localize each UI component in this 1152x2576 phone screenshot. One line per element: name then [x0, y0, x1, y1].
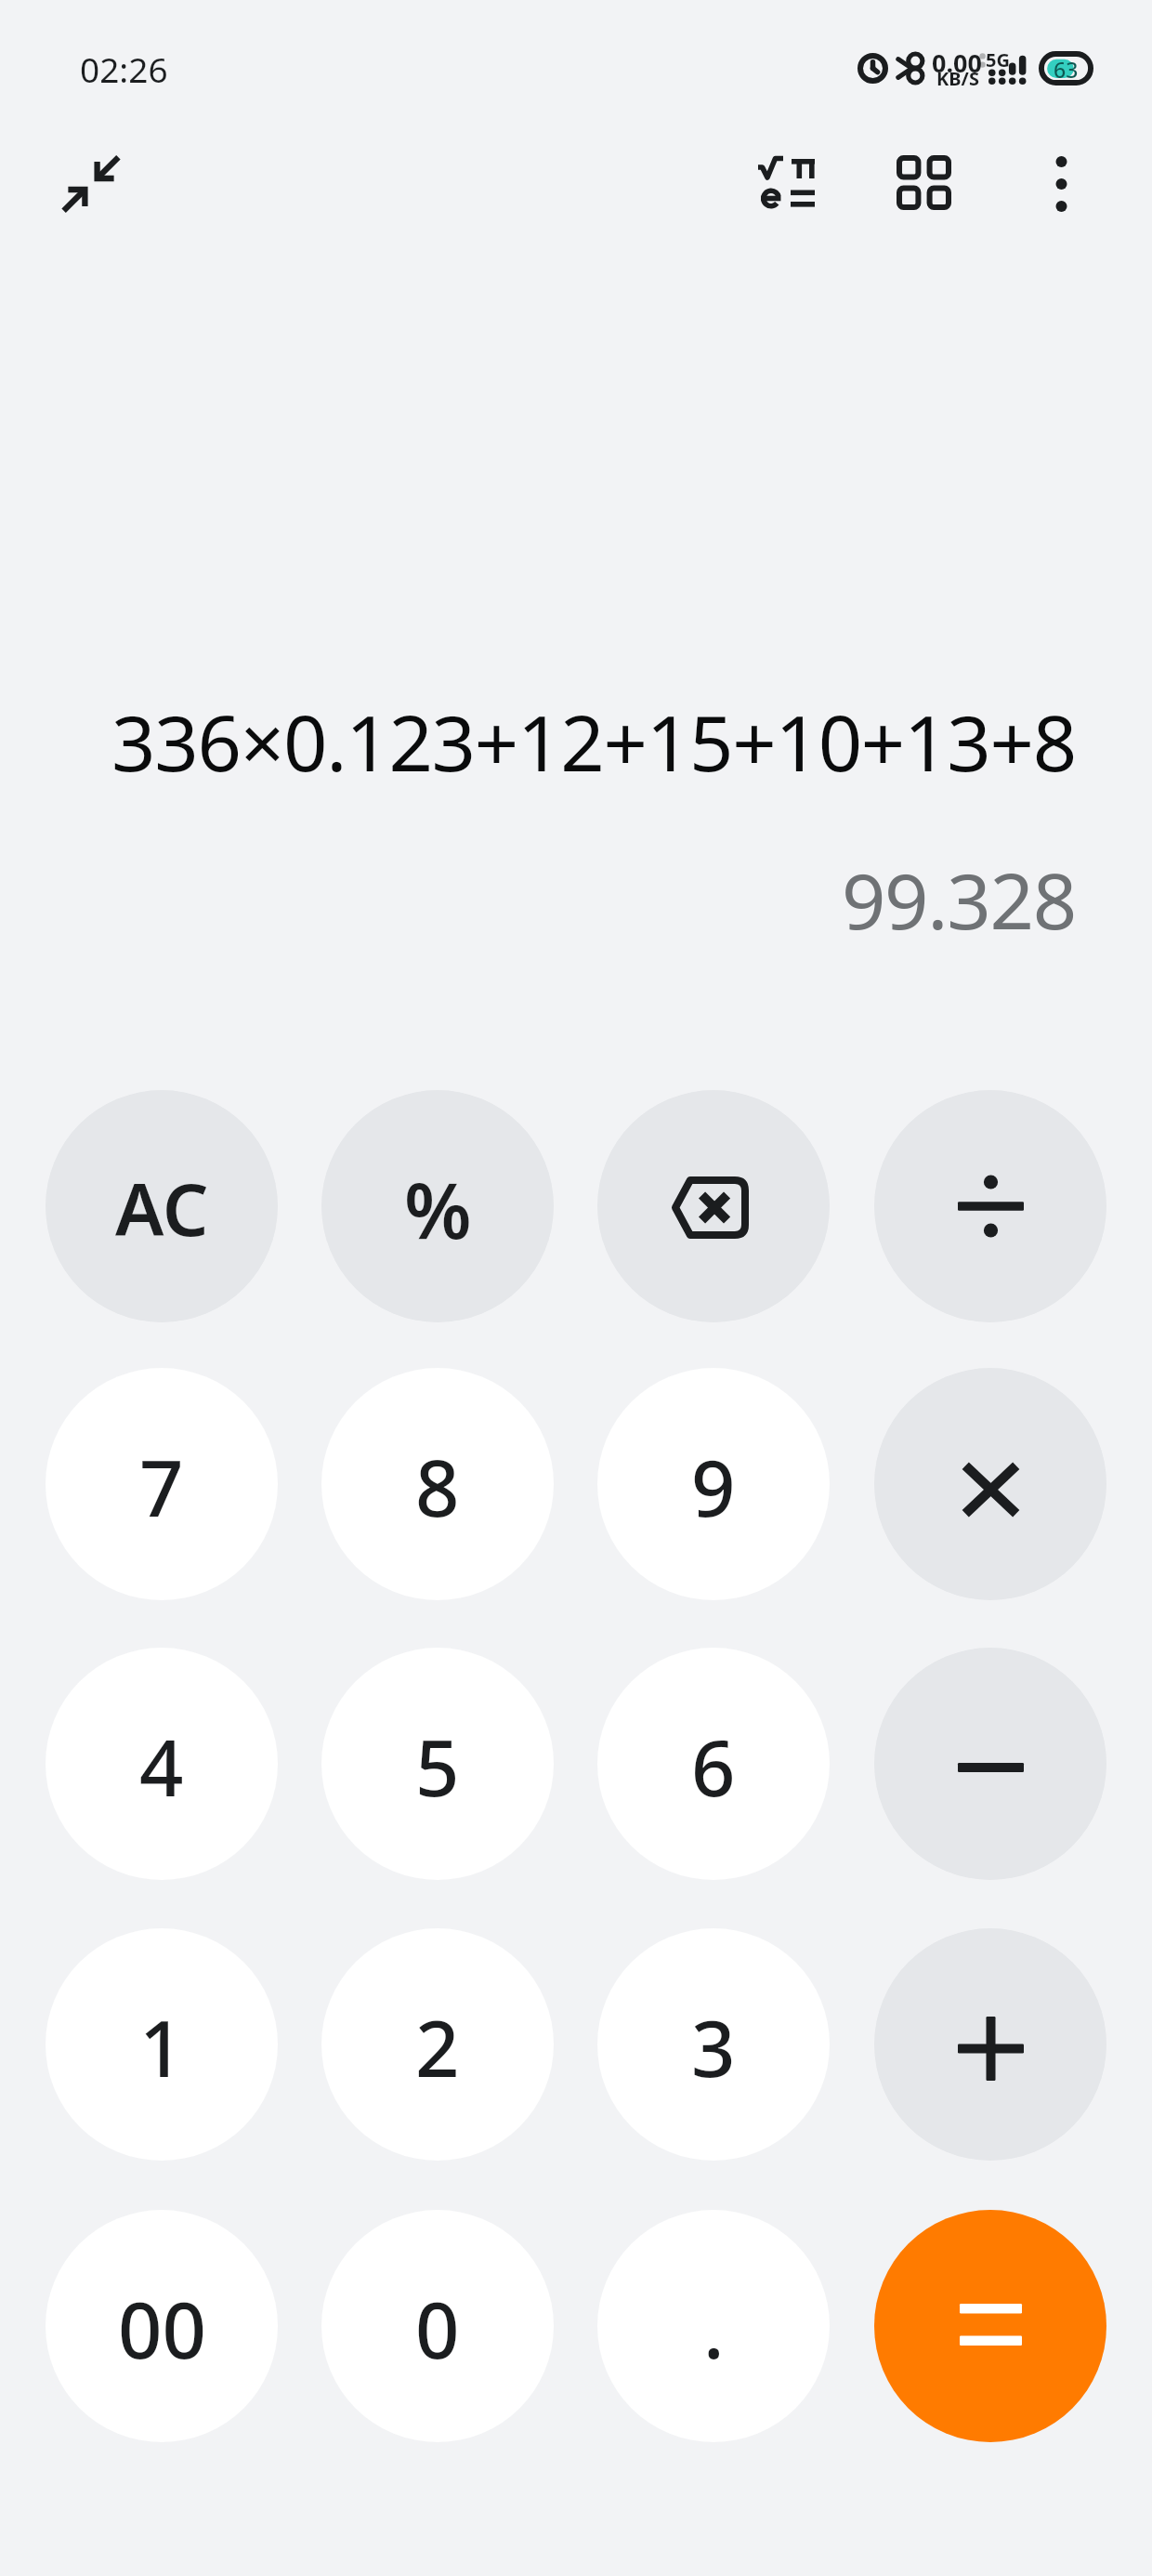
- button[interactable]: 4: [46, 1648, 278, 1880]
- staticText: 336×0.123+12+15+10+13+8: [37, 689, 1076, 794]
- button[interactable]: 5: [321, 1648, 554, 1880]
- button[interactable]: Backspace: [597, 1090, 830, 1322]
- button[interactable]: Multiply: [874, 1368, 1106, 1600]
- button[interactable]: 7: [46, 1368, 278, 1600]
- button[interactable]: 3: [597, 1928, 830, 2161]
- staticText: 0: [415, 2276, 460, 2381]
- staticText: 00: [118, 2276, 206, 2381]
- staticText: 99.328: [37, 847, 1076, 952]
- staticText: 0.00: [932, 46, 982, 80]
- staticText: AC: [115, 1159, 209, 1257]
- button[interactable]: 0: [321, 2210, 554, 2442]
- staticText: 3: [691, 1994, 736, 2099]
- button[interactable]: 6: [597, 1648, 830, 1880]
- staticText: 9: [691, 1434, 736, 1539]
- staticText: KB/S: [936, 66, 979, 91]
- staticText: 63: [1054, 55, 1079, 84]
- staticText: 02:26: [80, 46, 168, 92]
- button[interactable]: 00: [46, 2210, 278, 2442]
- button[interactable]: Divide: [874, 1090, 1106, 1322]
- button[interactable]: .: [597, 2210, 830, 2442]
- staticText: .: [703, 2276, 725, 2381]
- button[interactable]: Minus: [874, 1648, 1106, 1880]
- button[interactable]: Collapse: [35, 128, 147, 240]
- button[interactable]: 1: [46, 1928, 278, 2161]
- staticText: 8: [415, 1434, 460, 1539]
- button[interactable]: 8: [321, 1368, 554, 1600]
- staticText: 5: [415, 1714, 460, 1819]
- staticText: 5G: [986, 47, 1010, 72]
- staticText: 2: [415, 1994, 460, 2099]
- staticText: 6: [691, 1714, 736, 1819]
- button[interactable]: More options: [1005, 127, 1117, 239]
- button[interactable]: 9: [597, 1368, 830, 1600]
- button[interactable]: Plus: [874, 1928, 1106, 2161]
- button[interactable]: Scientific mode: [731, 126, 843, 238]
- staticText: 1: [139, 1994, 184, 2099]
- staticText: 7: [139, 1434, 184, 1539]
- button[interactable]: %: [321, 1090, 554, 1322]
- button[interactable]: 2: [321, 1928, 554, 2161]
- button[interactable]: AC: [46, 1090, 278, 1322]
- button[interactable]: Converters: [868, 126, 979, 238]
- button[interactable]: Equals: [874, 2210, 1106, 2442]
- staticText: 4: [139, 1714, 184, 1819]
- staticText: %: [404, 1156, 472, 1261]
